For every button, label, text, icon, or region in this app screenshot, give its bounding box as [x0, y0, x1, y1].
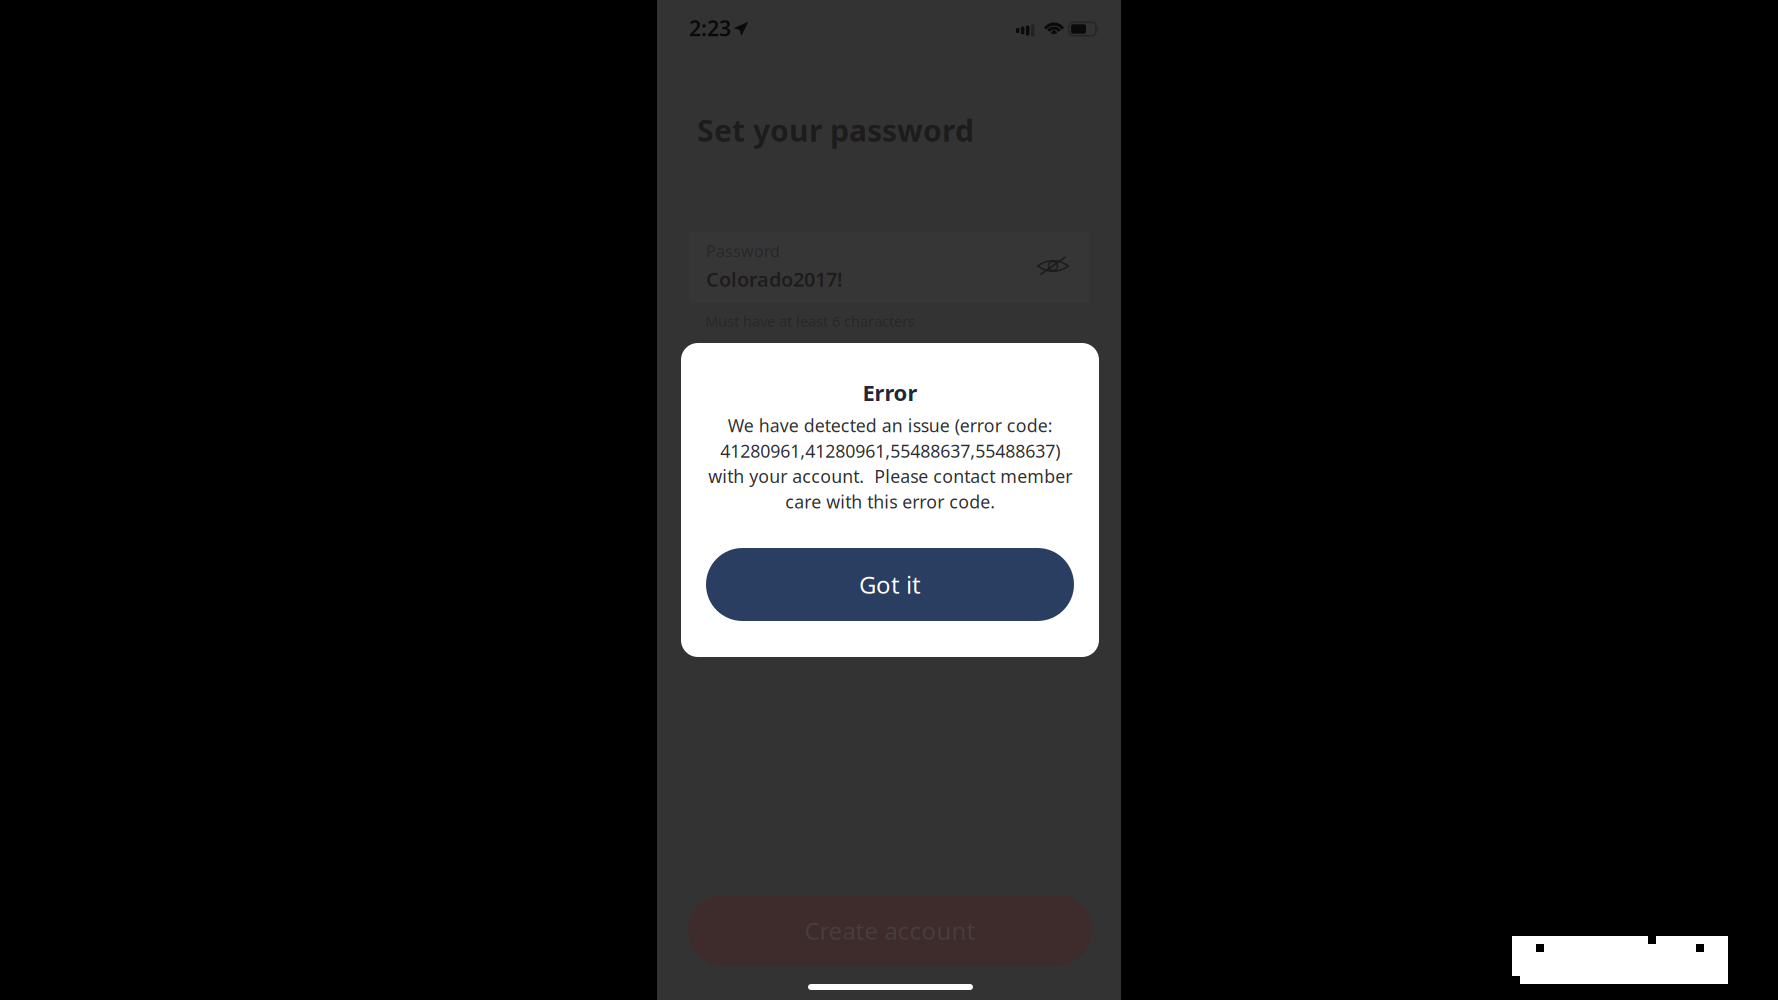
- staticText: Create account: [804, 914, 975, 947]
- button[interactable]: Got it: [706, 548, 1074, 621]
- staticText: Error: [862, 377, 917, 407]
- button[interactable]: Password: [689, 232, 1089, 303]
- button[interactable]: Create account: [688, 895, 1092, 966]
- staticText: Password: [706, 240, 780, 262]
- staticText: Colorado2017!: [706, 265, 843, 293]
- staticText: We have detected an issue (error code: 4…: [708, 413, 1072, 514]
- staticText: Must have at least 6 characters: [705, 311, 915, 331]
- staticText: Set your password: [697, 109, 974, 150]
- button[interactable]: Show password: [1036, 253, 1070, 279]
- staticText: Got it: [859, 569, 921, 600]
- staticText: 2:23: [689, 14, 731, 42]
